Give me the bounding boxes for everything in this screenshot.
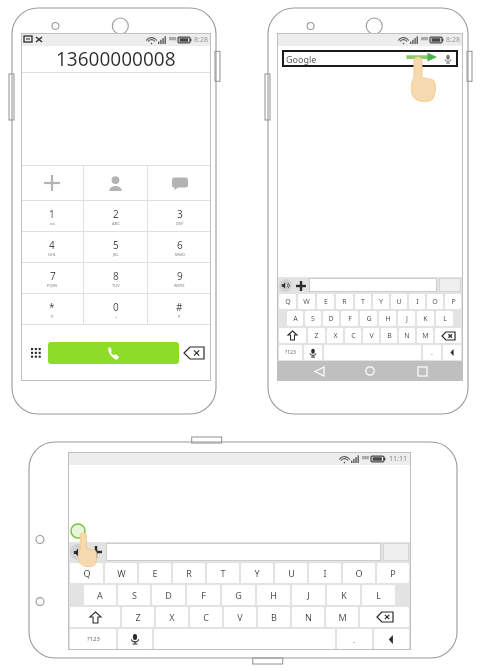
button[interactable]: N	[292, 607, 324, 627]
button[interactable]	[435, 328, 461, 343]
button[interactable]: K	[327, 585, 360, 605]
button[interactable]: X	[156, 607, 188, 627]
button[interactable]: Add	[88, 544, 104, 560]
button[interactable]	[360, 607, 409, 627]
button[interactable]: A	[84, 585, 116, 605]
button[interactable]: U	[275, 563, 307, 583]
button[interactable]: .	[423, 345, 441, 360]
button[interactable]: M	[326, 607, 358, 627]
button[interactable]: P	[445, 294, 461, 309]
button[interactable]: L	[362, 585, 395, 605]
button[interactable]	[148, 166, 211, 200]
button[interactable]: C	[345, 328, 361, 343]
button[interactable]: ?123	[279, 345, 302, 360]
button[interactable]: H	[379, 311, 396, 326]
button[interactable]: 1	[21, 201, 83, 231]
button[interactable]: P	[377, 563, 409, 583]
staticText: V	[369, 331, 374, 341]
button[interactable]: Voice input	[279, 279, 292, 292]
button[interactable]: R	[336, 294, 353, 309]
button[interactable]: 7	[21, 263, 83, 293]
button[interactable]: Q	[70, 563, 103, 583]
button[interactable]: Recents	[412, 361, 432, 381]
button[interactable]: Z	[308, 328, 325, 343]
button[interactable]: Keypad	[27, 344, 45, 362]
button[interactable]: *	[21, 294, 83, 324]
button[interactable]: 8	[84, 263, 147, 293]
button[interactable]: W	[298, 294, 315, 309]
button[interactable]: B	[381, 328, 397, 343]
button[interactable]	[279, 328, 306, 343]
button[interactable]	[21, 166, 83, 200]
button[interactable]: 4	[21, 232, 83, 262]
button[interactable]: Add	[294, 279, 307, 292]
button[interactable]: O	[427, 294, 443, 309]
button[interactable]: Call	[48, 342, 179, 364]
button[interactable]: Y	[241, 563, 273, 583]
button[interactable]: T	[207, 563, 239, 583]
button[interactable]: Voice input	[70, 544, 86, 560]
button[interactable]: E	[317, 294, 334, 309]
button[interactable]: J	[398, 311, 415, 326]
button[interactable]: U	[391, 294, 407, 309]
button[interactable]: Y	[373, 294, 389, 309]
button[interactable]: L	[436, 311, 453, 326]
button[interactable]: J	[292, 585, 325, 605]
button[interactable]: E	[139, 563, 171, 583]
button[interactable]: .	[337, 629, 372, 649]
button[interactable]	[374, 629, 409, 649]
button[interactable]: G	[222, 585, 255, 605]
button[interactable]: D	[152, 585, 185, 605]
button[interactable]	[84, 166, 147, 200]
button[interactable]: Q	[279, 294, 296, 309]
button[interactable]: Back	[309, 361, 329, 381]
button[interactable]: K	[417, 311, 434, 326]
button[interactable]: T	[355, 294, 371, 309]
button[interactable]: Home	[360, 361, 380, 381]
button[interactable]: X	[327, 328, 343, 343]
button[interactable]: C	[190, 607, 222, 627]
button[interactable]: I	[309, 563, 341, 583]
button[interactable]: N	[399, 328, 415, 343]
button[interactable]: 3	[148, 201, 211, 231]
button[interactable]: 0	[84, 294, 147, 324]
button[interactable]: G	[360, 311, 377, 326]
button[interactable]: Delete	[183, 346, 205, 360]
staticText: L	[443, 314, 447, 324]
button[interactable]: M	[417, 328, 433, 343]
button[interactable]: Z	[122, 607, 154, 627]
button[interactable]: 2	[84, 201, 147, 231]
button[interactable]: S	[118, 585, 150, 605]
button[interactable]: Enter	[439, 278, 461, 292]
button[interactable]: F	[187, 585, 220, 605]
button[interactable]: I	[409, 294, 425, 309]
button[interactable]: D	[323, 311, 339, 326]
button[interactable]: O	[343, 563, 375, 583]
button[interactable]: #	[148, 294, 211, 324]
button[interactable]: 6	[148, 232, 211, 262]
staticText: P	[390, 567, 396, 579]
button[interactable]	[304, 345, 322, 360]
button[interactable]: 9	[148, 263, 211, 293]
button[interactable]: 5	[84, 232, 147, 262]
button[interactable]: R	[173, 563, 205, 583]
button[interactable]: V	[363, 328, 379, 343]
button[interactable]: B	[258, 607, 290, 627]
button[interactable]	[309, 278, 437, 292]
button[interactable]: W	[105, 563, 137, 583]
button[interactable]: ?123	[70, 629, 116, 649]
button[interactable]: V	[224, 607, 256, 627]
button[interactable]	[443, 345, 461, 360]
staticText: P	[178, 314, 181, 319]
button[interactable]: A	[287, 311, 303, 326]
button[interactable]	[70, 607, 120, 627]
button[interactable]: F	[341, 311, 358, 326]
button[interactable]: H	[257, 585, 290, 605]
button[interactable]: S	[305, 311, 321, 326]
button[interactable]	[106, 543, 381, 561]
button[interactable]: Enter	[383, 543, 409, 561]
button[interactable]: Google	[282, 50, 458, 67]
button[interactable]	[118, 629, 152, 649]
